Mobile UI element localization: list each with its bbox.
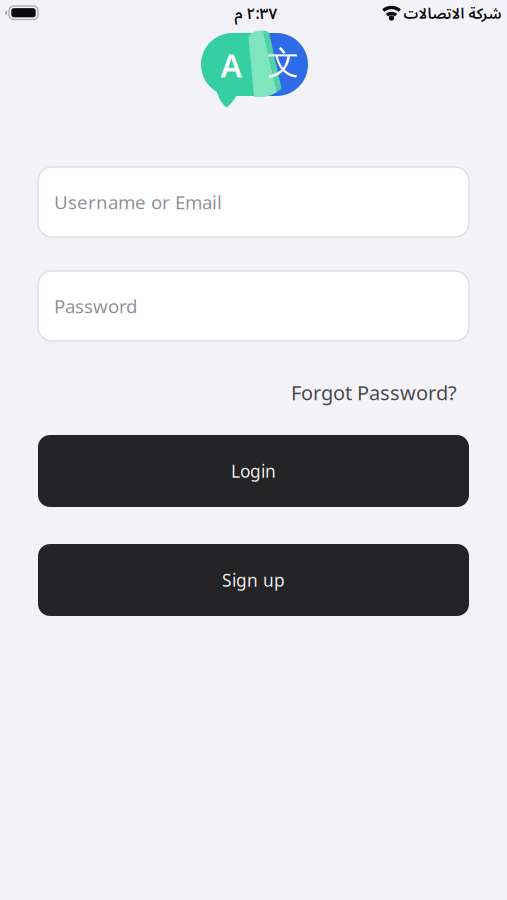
staticText: Username or Email	[54, 190, 222, 214]
staticText: ٢:٣٧ م	[234, 0, 277, 30]
staticText: شركة الاتصالات	[403, 0, 501, 29]
staticText: Login	[231, 459, 276, 482]
staticText: Forgot Password?	[291, 379, 457, 406]
button[interactable]: Sign up	[38, 544, 469, 616]
button[interactable]: Username or Email	[38, 167, 469, 237]
staticText: 文	[267, 43, 299, 83]
button[interactable]: Login	[38, 435, 469, 507]
staticText: Password	[54, 294, 137, 318]
button[interactable]: Forgot Password?	[217, 378, 457, 406]
staticText: Sign up	[222, 568, 285, 591]
button[interactable]: Password	[38, 271, 469, 341]
staticText: A	[220, 44, 242, 86]
